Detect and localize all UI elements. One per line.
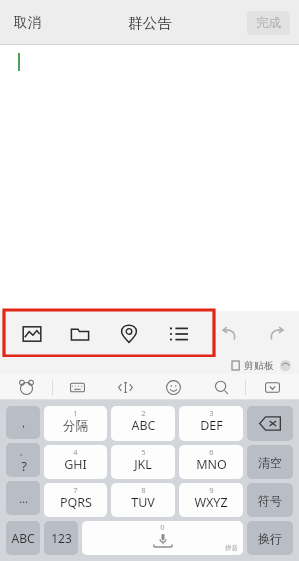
staticText: 符号 xyxy=(258,493,282,508)
staticText: 换行 xyxy=(258,531,282,546)
button[interactable]: Edit text xyxy=(101,374,149,400)
staticText: 剪贴板 xyxy=(244,359,274,372)
staticText: GHI xyxy=(64,456,87,473)
staticText: 分隔 xyxy=(63,418,88,434)
button[interactable]: Folder xyxy=(56,311,104,357)
staticText: TUV xyxy=(131,494,155,511)
button[interactable]: 123 xyxy=(44,521,78,555)
button[interactable]: 8 xyxy=(111,483,175,517)
staticText: 5 xyxy=(141,447,146,457)
button[interactable]: List xyxy=(154,311,204,357)
staticText: DEF xyxy=(200,417,223,434)
button[interactable]: Keyboard xyxy=(53,374,101,400)
staticText: 。 xyxy=(19,446,28,457)
button[interactable]: 清空 xyxy=(247,445,293,479)
button[interactable]: 换行 xyxy=(247,521,293,555)
staticText: 取消 xyxy=(14,14,41,31)
button[interactable]: 1 xyxy=(44,406,107,441)
button[interactable]: Emoji xyxy=(149,374,197,400)
staticText: 6 xyxy=(209,447,214,457)
button[interactable]: Baidu input xyxy=(0,374,52,400)
button[interactable]: Collapse keyboard xyxy=(246,374,299,400)
button[interactable]: 完成 xyxy=(247,11,290,35)
button[interactable]: Space xyxy=(82,521,243,555)
staticText: 2 xyxy=(141,408,146,418)
button[interactable]: 3 xyxy=(179,406,243,441)
button[interactable]: ABC xyxy=(6,521,40,555)
button[interactable]: Search xyxy=(197,374,245,400)
staticText: 拼音 xyxy=(225,544,238,552)
button[interactable]: 2 xyxy=(111,406,175,441)
button[interactable]: 符号 xyxy=(247,483,293,517)
button[interactable]: 9 xyxy=(179,483,243,517)
staticText: 7 xyxy=(73,485,78,495)
staticText: 群公告 xyxy=(128,14,172,32)
staticText: WXYZ xyxy=(194,494,228,511)
staticText: ABC xyxy=(11,530,35,546)
staticText: ， xyxy=(18,416,29,430)
staticText: 0 xyxy=(160,522,165,532)
button[interactable]: … xyxy=(6,481,40,515)
staticText: JKL xyxy=(134,456,152,473)
staticText: 9 xyxy=(209,485,214,495)
staticText: 完成 xyxy=(256,15,281,31)
staticText: 清空 xyxy=(258,455,282,470)
staticText: PQRS xyxy=(60,494,92,511)
button[interactable]: 5 xyxy=(111,445,175,479)
staticText: ? xyxy=(21,457,27,475)
staticText: MNO xyxy=(196,456,227,473)
button[interactable]: Location xyxy=(104,311,154,357)
button[interactable]: 。 xyxy=(6,443,40,477)
button[interactable]: 6 xyxy=(179,445,243,479)
staticText: 3 xyxy=(209,408,214,418)
button[interactable]: 4 xyxy=(44,445,107,479)
button[interactable]: 7 xyxy=(44,483,107,517)
button[interactable]: Undo xyxy=(207,311,253,357)
staticText: 8 xyxy=(141,485,146,495)
button[interactable]: Redo xyxy=(253,311,299,357)
button[interactable]: Insert image xyxy=(8,311,56,357)
button[interactable]: 取消 xyxy=(8,10,47,35)
button[interactable]: 剪贴板 xyxy=(232,359,291,372)
staticText: 123 xyxy=(51,530,72,546)
staticText: 1 xyxy=(73,408,78,418)
staticText: … xyxy=(19,491,28,506)
staticText: ABC xyxy=(131,417,156,434)
staticText: 4 xyxy=(73,447,78,457)
button[interactable]: ， xyxy=(6,406,40,439)
button[interactable]: Backspace xyxy=(247,406,293,441)
